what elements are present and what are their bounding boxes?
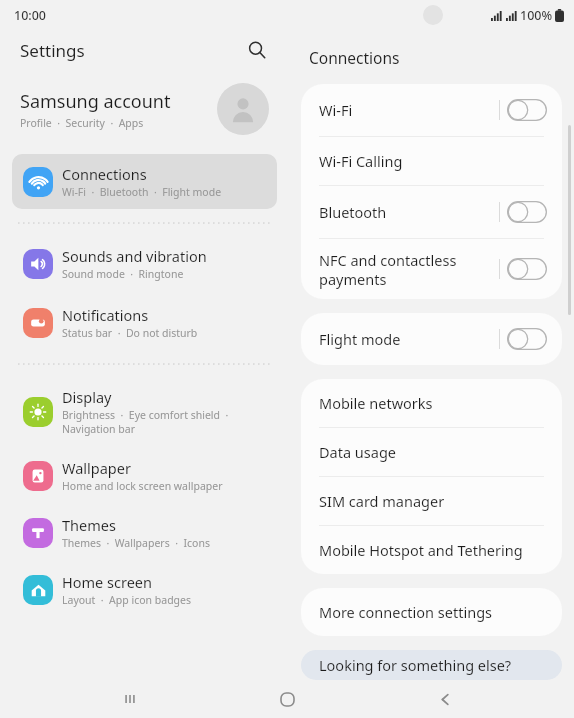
staticText: Sounds and vibration [62,246,207,266]
staticText: Home screen [62,572,152,592]
staticText: Samsung account [20,89,171,114]
button[interactable]: SIM card manager [301,477,562,526]
staticText: Themes · Wallpapers · Icons [62,536,210,550]
button[interactable]: Wallpaper [12,448,277,503]
button[interactable]: Themes [12,505,277,560]
staticText: Mobile networks [319,393,554,413]
button[interactable]: Sounds and vibration [12,236,277,291]
staticText: Data usage [319,442,554,462]
staticText: Connections [309,47,400,68]
button[interactable] [500,92,554,128]
button[interactable]: Notifications [12,295,277,350]
staticText: 100% [520,7,553,24]
staticText: Wi-Fi [319,100,499,120]
staticText: Profile · Security · Apps [20,116,144,130]
button[interactable]: Looking for something else? [301,650,562,680]
staticText: Flight mode [319,329,499,349]
button[interactable]: Back [417,680,473,718]
button[interactable]: Bluetooth [301,186,562,239]
button[interactable]: Recents [102,680,158,718]
staticText: Connections [62,164,147,184]
button[interactable]: NFC and contactless payments [301,239,562,299]
staticText: Wi-Fi · Bluetooth · Flight mode [62,185,222,199]
button[interactable]: Home [259,680,315,718]
staticText: Display [62,387,112,407]
staticText: Layout · App icon badges [62,593,192,607]
button[interactable]: Flight mode [301,313,562,365]
button[interactable]: Wi-Fi Calling [301,137,562,186]
button[interactable]: Mobile Hotspot and Tethering [301,526,562,574]
button[interactable]: Samsung account [0,70,289,148]
button[interactable]: Mobile networks [301,379,562,428]
staticText: Home and lock screen wallpaper [62,479,223,493]
staticText: Wallpaper [62,458,131,478]
staticText: Looking for something else? [319,655,512,675]
staticText: Settings [20,39,85,62]
staticText: Notifications [62,305,149,325]
staticText: Wi-Fi Calling [319,151,554,171]
button[interactable] [500,251,554,287]
staticText: Bluetooth [319,202,499,222]
staticText: Sound mode · Ringtone [62,267,184,281]
button[interactable]: Display [12,377,277,446]
button[interactable]: Wi-Fi [301,84,562,137]
staticText: Brightness · Eye comfort shield · Naviga… [62,408,229,436]
staticText: Themes [62,515,116,535]
button[interactable]: Search [237,30,277,70]
button[interactable]: Data usage [301,428,562,477]
staticText: 10:00 [14,7,47,24]
staticText: Status bar · Do not disturb [62,326,198,340]
staticText: Mobile Hotspot and Tethering [319,540,554,560]
staticText: SIM card manager [319,491,554,511]
button[interactable]: More connection settings [301,588,562,636]
button[interactable] [500,194,554,230]
staticText: More connection settings [319,602,554,622]
button[interactable]: Home screen [12,562,277,617]
staticText: NFC and contactless payments [319,250,499,289]
button[interactable]: Connections [12,154,277,209]
button[interactable] [500,321,554,357]
